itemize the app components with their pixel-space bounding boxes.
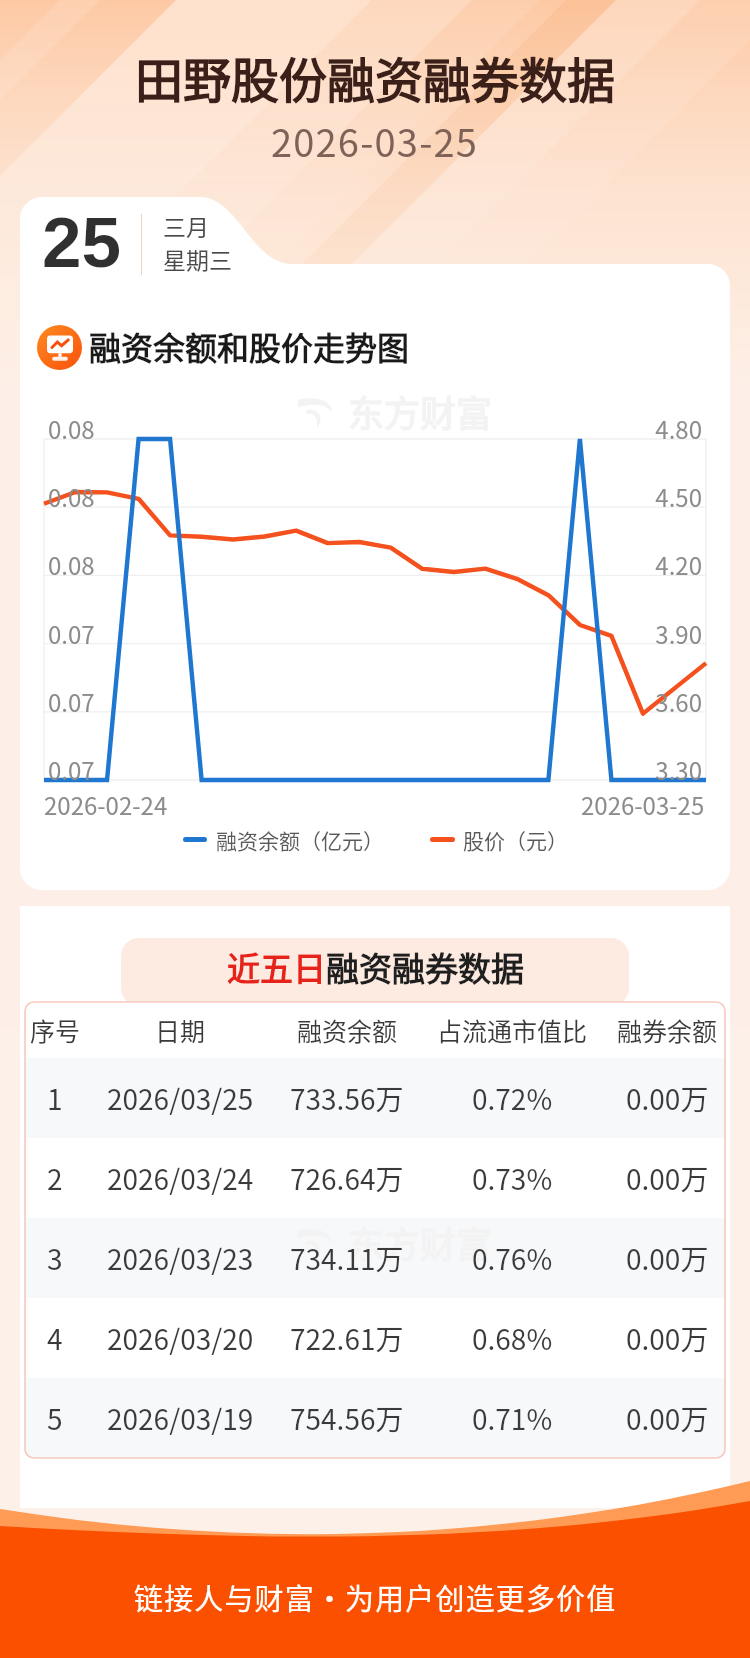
- staticText: 25: [42, 203, 121, 282]
- staticText: 融资余额: [297, 1012, 398, 1048]
- staticText: 0.00万: [626, 1158, 709, 1199]
- button[interactable]: 5: [25, 1378, 725, 1458]
- staticText: 3.90: [598, 616, 702, 651]
- staticText: 三月: [163, 209, 209, 242]
- staticText: 融资余额和股价走势图: [89, 323, 410, 369]
- staticText: 链接人与财富·为用户创造更多价值: [134, 1576, 617, 1618]
- staticText: 股价（元）: [463, 825, 568, 853]
- staticText: 序号: [30, 1012, 81, 1048]
- staticText: 星期三: [163, 242, 232, 275]
- staticText: 近五日融资融券数据: [227, 943, 524, 991]
- staticText: 0.08: [48, 411, 95, 446]
- staticText: 2026/03/24: [107, 1158, 254, 1199]
- staticText: 0.08: [48, 547, 95, 582]
- staticText: 3.30: [598, 752, 702, 787]
- staticText: 3.60: [598, 684, 702, 719]
- staticText: 2026-03-25: [271, 113, 479, 168]
- button[interactable]: 序号: [25, 1002, 725, 1058]
- button[interactable]: 走势图: [37, 325, 82, 370]
- staticText: 2026/03/25: [107, 1078, 254, 1119]
- staticText: 2: [47, 1158, 63, 1199]
- button[interactable]: 4: [25, 1298, 725, 1378]
- staticText: 融券余额: [617, 1012, 718, 1048]
- staticText: 0.07: [48, 616, 95, 651]
- staticText: 东方财富: [348, 385, 493, 437]
- staticText: 2026/03/23: [107, 1238, 254, 1279]
- staticText: 0.00万: [626, 1398, 709, 1439]
- staticText: 0.00万: [626, 1318, 709, 1359]
- staticText: 733.56万: [290, 1078, 404, 1119]
- staticText: 0.76%: [472, 1238, 553, 1279]
- staticText: 734.11万: [290, 1238, 404, 1279]
- staticText: 0.07: [48, 684, 95, 719]
- button[interactable]: 2: [25, 1138, 725, 1218]
- staticText: 722.61万: [290, 1318, 404, 1359]
- staticText: 0.07: [48, 752, 95, 787]
- staticText: 0.71%: [472, 1398, 553, 1439]
- staticText: 0.08: [48, 479, 95, 514]
- staticText: 0.00万: [626, 1078, 709, 1119]
- button[interactable]: 3: [25, 1218, 725, 1298]
- staticText: 0.00万: [626, 1238, 709, 1279]
- staticText: 1: [47, 1078, 63, 1119]
- staticText: 726.64万: [290, 1158, 404, 1199]
- staticText: 2026/03/19: [107, 1398, 254, 1439]
- staticText: 融资余额（亿元）: [216, 825, 384, 853]
- staticText: 4.20: [598, 547, 702, 582]
- staticText: 4: [47, 1318, 63, 1359]
- staticText: 4.80: [598, 411, 702, 446]
- staticText: 占流通市值比: [437, 1012, 588, 1048]
- staticText: 2026-02-24: [44, 787, 168, 822]
- staticText: 田野股份融资融券数据: [135, 42, 616, 112]
- staticText: 日期: [155, 1012, 206, 1048]
- button[interactable]: 1: [25, 1058, 725, 1138]
- staticText: 0.68%: [472, 1318, 553, 1359]
- staticText: 2026-03-25: [581, 787, 705, 822]
- staticText: 0.72%: [472, 1078, 553, 1119]
- staticText: 0.73%: [472, 1158, 553, 1199]
- staticText: 754.56万: [290, 1398, 404, 1439]
- staticText: 4.50: [598, 479, 702, 514]
- staticText: 3: [47, 1238, 63, 1279]
- staticText: 东方财富: [348, 1216, 493, 1268]
- staticText: 2026/03/20: [107, 1318, 254, 1359]
- staticText: 5: [47, 1398, 63, 1439]
